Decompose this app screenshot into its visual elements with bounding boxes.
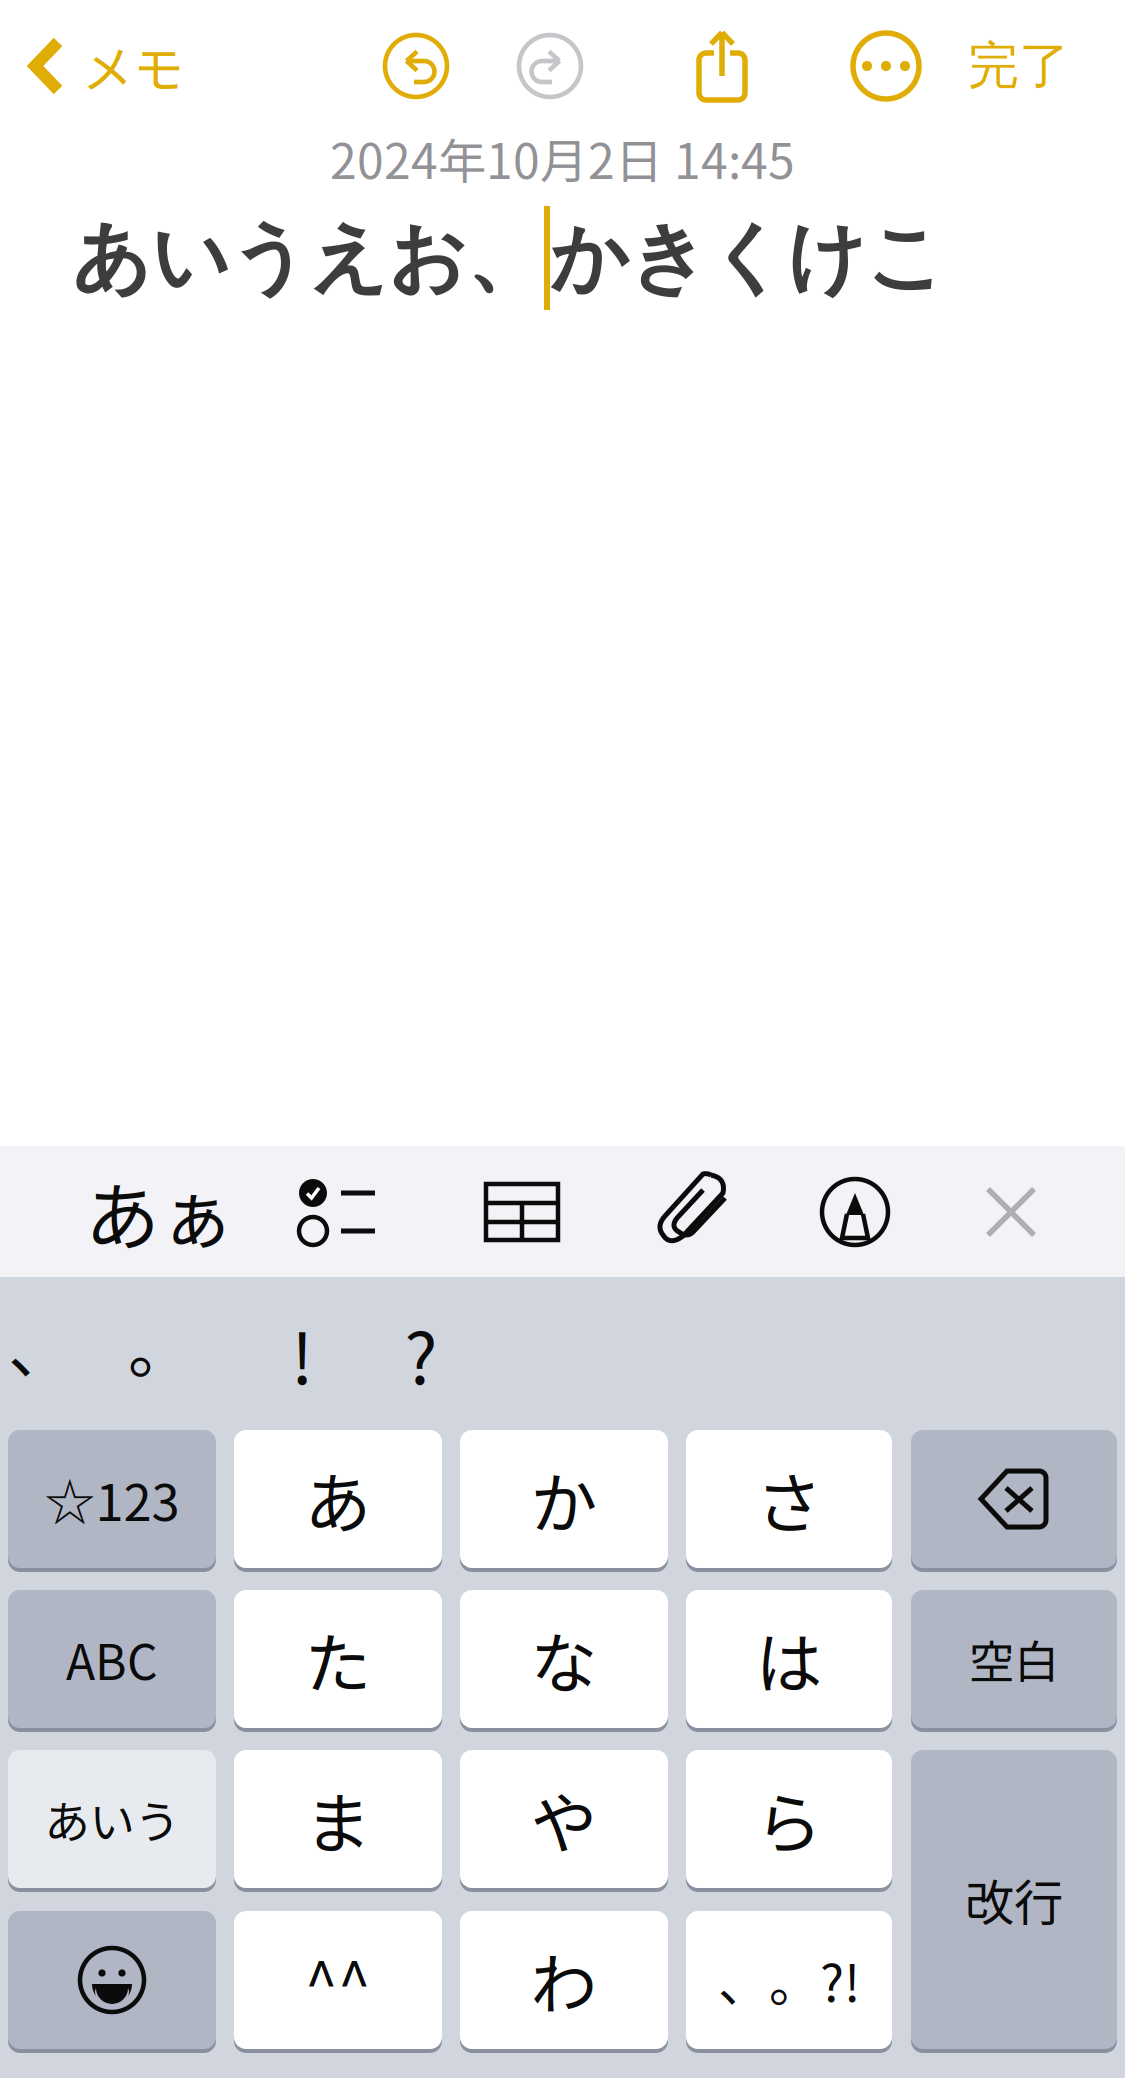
- staticText: わ: [530, 1932, 597, 2028]
- staticText: ^^: [305, 1937, 371, 2022]
- button[interactable]: Redo: [517, 33, 583, 99]
- button[interactable]: ら: [686, 1750, 892, 1892]
- staticText: 完了: [968, 34, 1070, 98]
- staticText: は: [755, 1611, 822, 1707]
- button[interactable]: か: [460, 1430, 668, 1572]
- button[interactable]: や: [460, 1750, 668, 1892]
- button[interactable]: 改行: [911, 1750, 1117, 2053]
- button[interactable]: Checklist: [283, 1153, 393, 1271]
- staticText: 、。?!: [718, 1943, 860, 2017]
- staticText: あ: [304, 1451, 371, 1547]
- button[interactable]: Share: [694, 26, 750, 104]
- button[interactable]: あ: [234, 1430, 442, 1572]
- staticText: 改行: [965, 1864, 1063, 1935]
- staticText: あぁ: [85, 1158, 235, 1266]
- button[interactable]: 、: [0, 1297, 85, 1393]
- button[interactable]: 。: [115, 1297, 205, 1393]
- staticText: 空白: [969, 1626, 1059, 1692]
- staticText: あいうえお、: [72, 209, 544, 307]
- staticText: あいう: [44, 1786, 179, 1852]
- button[interactable]: メモ: [28, 18, 228, 114]
- staticText: ?: [404, 1304, 437, 1404]
- staticText: ☆123: [44, 1462, 179, 1536]
- button[interactable]: Markup: [800, 1153, 910, 1271]
- button[interactable]: 完了: [910, 18, 1070, 114]
- staticText: さ: [755, 1451, 822, 1547]
- button[interactable]: [911, 1430, 1117, 1572]
- staticText: や: [530, 1771, 597, 1867]
- button[interactable]: た: [234, 1590, 442, 1732]
- staticText: た: [304, 1611, 371, 1707]
- staticText: な: [530, 1611, 597, 1707]
- button[interactable]: More: [853, 33, 919, 99]
- button[interactable]: あぁ: [85, 1153, 235, 1271]
- staticText: 2024年10月2日 14:45: [330, 123, 795, 193]
- button[interactable]: Undo: [383, 33, 449, 99]
- staticText: ら: [755, 1771, 822, 1867]
- button[interactable]: [8, 1911, 216, 2053]
- button[interactable]: は: [686, 1590, 892, 1732]
- staticText: メモ: [82, 29, 184, 103]
- button[interactable]: Hide keyboard: [956, 1153, 1066, 1271]
- button[interactable]: ☆123: [8, 1430, 216, 1572]
- button[interactable]: な: [460, 1590, 668, 1732]
- staticText: !: [291, 1304, 313, 1404]
- button[interactable]: あいう: [8, 1750, 216, 1892]
- staticText: ま: [304, 1771, 371, 1867]
- button[interactable]: !: [257, 1306, 347, 1402]
- button[interactable]: わ: [460, 1911, 668, 2053]
- button[interactable]: 、。?!: [686, 1911, 892, 2053]
- staticText: かきくけこ: [550, 209, 945, 307]
- button[interactable]: ABC: [8, 1590, 216, 1732]
- button[interactable]: さ: [686, 1430, 892, 1572]
- button[interactable]: 空白: [911, 1590, 1117, 1732]
- button[interactable]: ?: [376, 1306, 466, 1402]
- staticText: 、: [8, 1299, 72, 1391]
- staticText: 。: [128, 1299, 192, 1391]
- button[interactable]: Table: [467, 1153, 577, 1271]
- staticText: ABC: [66, 1624, 158, 1694]
- staticText: か: [530, 1451, 597, 1547]
- button[interactable]: ま: [234, 1750, 442, 1892]
- button[interactable]: ^^: [234, 1911, 442, 2053]
- button[interactable]: Attach: [636, 1153, 746, 1271]
